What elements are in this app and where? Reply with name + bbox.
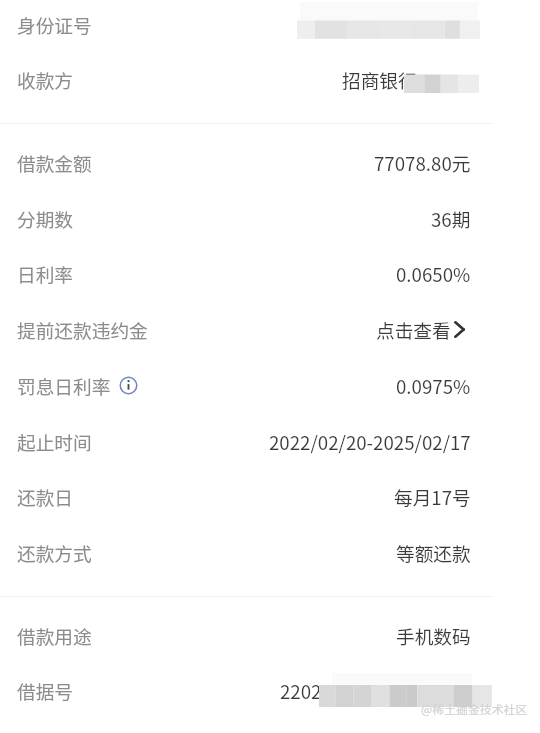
staticText: 日利率 [17,260,74,287]
staticText: 身份证号 [17,11,92,38]
staticText: 每月17号 [394,483,471,510]
staticText: 手机数码 [396,622,471,649]
button[interactable]: Penalty interest rate info [119,376,138,395]
button[interactable]: 分期数 [0,190,540,246]
staticText: 提前还款违约金 [17,316,148,343]
staticText: 点击查看 [376,316,451,343]
button[interactable]: 借据号 [0,662,540,718]
button[interactable]: 还款方式 [0,524,540,580]
staticText: 分期数 [17,205,74,232]
staticText: 还款日 [17,483,74,510]
staticText: 借款用途 [17,622,92,649]
staticText: 2202 [280,677,322,704]
staticText: 收款方 [17,66,74,93]
staticText: 借据号 [17,677,74,704]
staticText: @稀土掘金技术社区 [421,700,528,717]
button[interactable]: 借款金额 [0,134,540,190]
staticText: 还款方式 [17,539,92,566]
staticText: 2022/02/20-2025/02/17 [269,428,471,455]
button[interactable]: 借款用途 [0,607,540,663]
staticText: 招商银行 [342,66,417,93]
button[interactable]: 提前还款违约金 [0,301,540,357]
button[interactable]: 还款日 [0,468,540,524]
staticText: 等额还款 [396,539,471,566]
button[interactable]: 身份证号 [0,0,540,52]
staticText: 起止时间 [17,428,92,455]
staticText: 0.0975% [396,372,471,399]
staticText: 罚息日利率 [17,372,111,399]
button[interactable]: 收款方 [0,51,540,107]
staticText: 0.0650% [396,260,471,287]
staticText: 借款金额 [17,149,92,176]
button[interactable]: 日利率 [0,245,540,301]
button[interactable]: 罚息日利率 [0,357,540,413]
staticText: 36期 [431,205,471,232]
staticText: 77078.80元 [374,149,471,176]
button[interactable]: 起止时间 [0,413,540,469]
